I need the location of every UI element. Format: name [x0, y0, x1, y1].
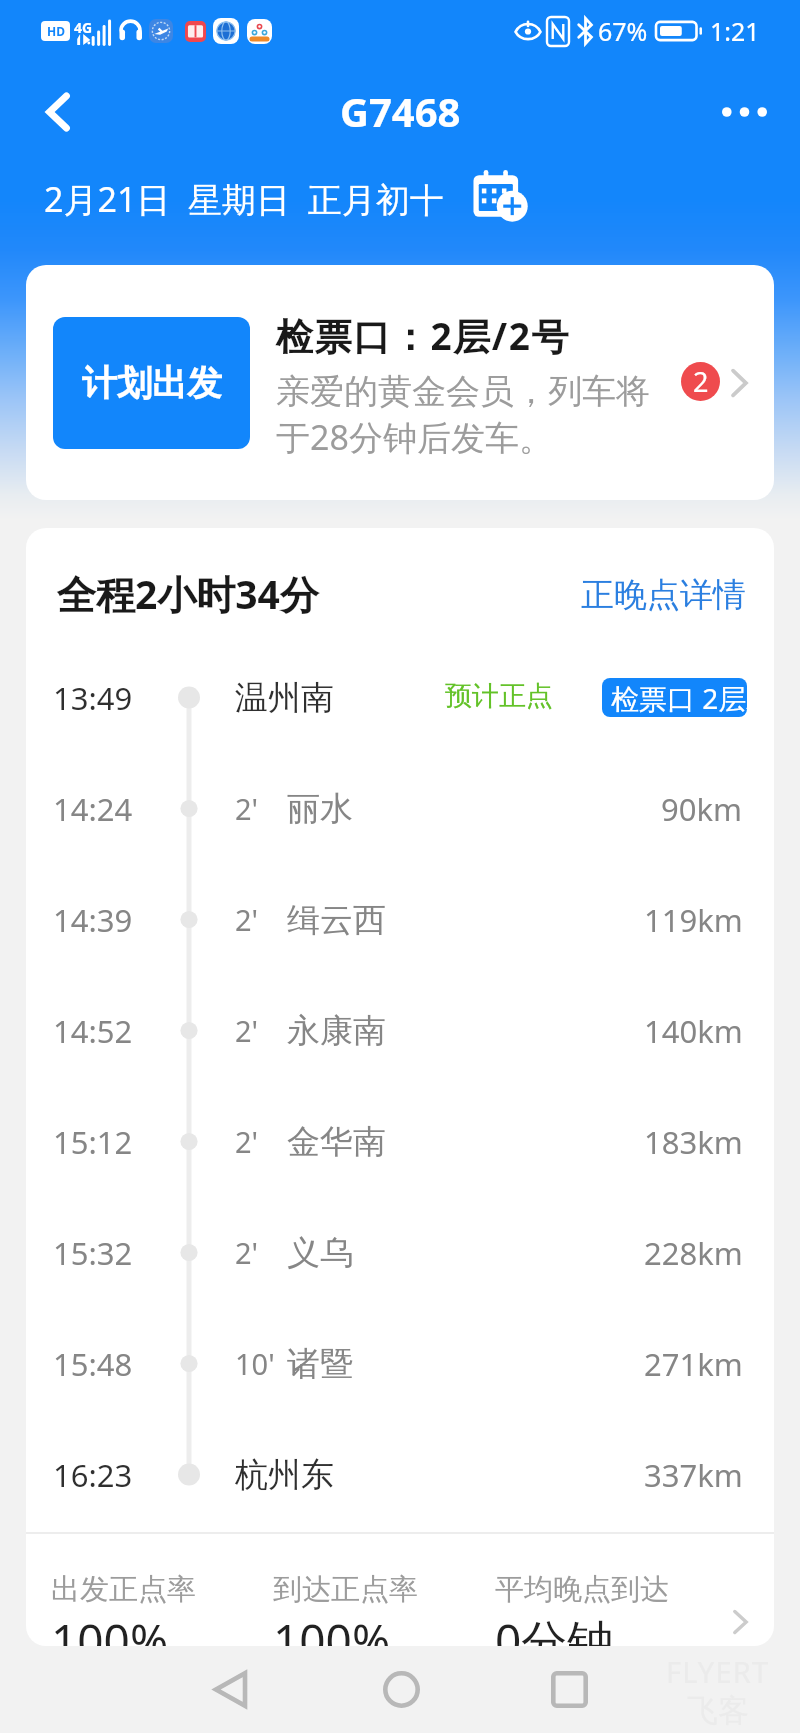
staticText: 16:23 — [53, 1454, 133, 1496]
button[interactable]: 15:48 — [26, 1308, 774, 1419]
staticText: 计划出发 — [82, 361, 222, 405]
staticText: 永康南 — [287, 1010, 386, 1052]
button[interactable]: 14:39 — [26, 864, 774, 975]
staticText: 于28分钟后发车。 — [276, 414, 553, 460]
button[interactable]: Home — [336, 1646, 466, 1733]
staticText: 2' — [235, 1011, 259, 1050]
staticText: 检票口：2层/2号 — [276, 310, 571, 361]
staticText: 14:39 — [53, 899, 133, 941]
staticText: 14:52 — [53, 1010, 133, 1052]
button[interactable]: 16:23 — [26, 1419, 774, 1530]
staticText: 271km — [644, 1343, 743, 1385]
staticText: HD — [47, 23, 65, 39]
staticText: 全程2小时34分 — [57, 567, 319, 620]
staticText: 13:49 — [53, 677, 133, 719]
staticText: 平均晚点到达 — [495, 1571, 669, 1608]
staticText: 15:32 — [53, 1232, 133, 1274]
staticText: 228km — [644, 1232, 743, 1274]
button[interactable]: 正晚点详情 — [563, 569, 763, 621]
staticText: 119km — [644, 899, 743, 941]
staticText: 诸暨 — [287, 1343, 353, 1385]
staticText: 2月21日 星期日 正月初十 — [44, 176, 444, 222]
button[interactable]: 计划出发 — [26, 265, 774, 500]
staticText: 90km — [661, 788, 743, 830]
staticText: 杭州东 — [235, 1454, 334, 1496]
staticText: 140km — [644, 1010, 743, 1052]
staticText: 金华南 — [287, 1121, 386, 1163]
button[interactable]: 13:49 — [26, 642, 774, 753]
button[interactable]: More options — [692, 62, 800, 162]
staticText: 2' — [235, 1122, 259, 1161]
staticText: 到达正点率 — [273, 1571, 418, 1608]
staticText: 正晚点详情 — [581, 574, 746, 616]
button[interactable]: Add to calendar — [466, 166, 538, 226]
button[interactable]: 15:32 — [26, 1197, 774, 1308]
staticText: 337km — [644, 1454, 743, 1496]
staticText: 2 — [693, 363, 709, 400]
staticText: 2' — [235, 789, 259, 828]
staticText: 亲爱的黄金会员，列车将 — [276, 370, 650, 413]
staticText: G7468 — [340, 84, 461, 138]
staticText: 67% — [598, 14, 648, 48]
staticText: 温州南 — [235, 677, 334, 719]
button[interactable]: 14:52 — [26, 975, 774, 1086]
staticText: 2' — [235, 900, 259, 939]
button[interactable]: 14:24 — [26, 753, 774, 864]
staticText: 0分钟 — [495, 1609, 614, 1646]
staticText: 缉云西 — [287, 899, 386, 941]
staticText: 14:24 — [53, 788, 133, 830]
button[interactable]: Recents — [504, 1646, 634, 1733]
staticText: 100% — [273, 1609, 391, 1646]
staticText: 10' — [235, 1344, 275, 1383]
staticText: 检票口 2层/2号 — [611, 679, 747, 717]
staticText: 100% — [51, 1609, 169, 1646]
staticText: 15:12 — [53, 1121, 133, 1163]
button[interactable]: 出发正点率 — [26, 1534, 774, 1646]
staticText: 2' — [235, 1233, 259, 1272]
button[interactable]: Back — [165, 1646, 295, 1733]
staticText: 4G — [74, 18, 93, 37]
staticText: 1:21 — [710, 14, 760, 48]
staticText: 义乌 — [287, 1232, 353, 1274]
button[interactable]: 15:12 — [26, 1086, 774, 1197]
staticText: 183km — [644, 1121, 743, 1163]
staticText: 出发正点率 — [51, 1571, 196, 1608]
staticText: 15:48 — [53, 1343, 133, 1385]
staticText: 预计正点 — [445, 679, 553, 713]
staticText: 丽水 — [287, 788, 353, 830]
button[interactable]: Back — [0, 62, 112, 162]
